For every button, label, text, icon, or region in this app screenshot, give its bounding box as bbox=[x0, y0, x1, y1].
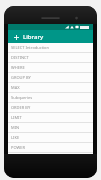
button[interactable]: DISTINCT bbox=[8, 53, 93, 63]
button[interactable]: SELECT Introduction bbox=[8, 43, 93, 53]
button[interactable]: GROUP BY bbox=[8, 73, 93, 83]
staticText: WHERE bbox=[11, 65, 25, 70]
staticText: Library bbox=[23, 33, 44, 41]
staticText: GROUP BY bbox=[11, 75, 31, 80]
staticText: SELECT Introduction bbox=[11, 45, 50, 50]
staticText: LIKE bbox=[11, 135, 20, 140]
staticText: MIN bbox=[11, 125, 20, 130]
staticText: Subqueries bbox=[11, 95, 33, 100]
staticText: LIMIT bbox=[11, 115, 22, 120]
button[interactable]: WHERE bbox=[8, 63, 93, 73]
staticText: DISTINCT bbox=[11, 55, 29, 60]
button[interactable]: Subqueries bbox=[8, 93, 93, 103]
staticText: MAX bbox=[11, 85, 20, 90]
button[interactable]: LIMIT bbox=[8, 113, 93, 123]
button[interactable]: Add bbox=[11, 32, 21, 42]
staticText: ORDER BY bbox=[11, 105, 31, 110]
button[interactable]: MIN bbox=[8, 123, 93, 133]
button[interactable]: LIKE bbox=[8, 133, 93, 143]
button[interactable]: POWER bbox=[8, 143, 93, 153]
staticText: POWER bbox=[11, 145, 25, 150]
button[interactable]: MAX bbox=[8, 83, 93, 93]
button[interactable]: ORDER BY bbox=[8, 103, 93, 113]
